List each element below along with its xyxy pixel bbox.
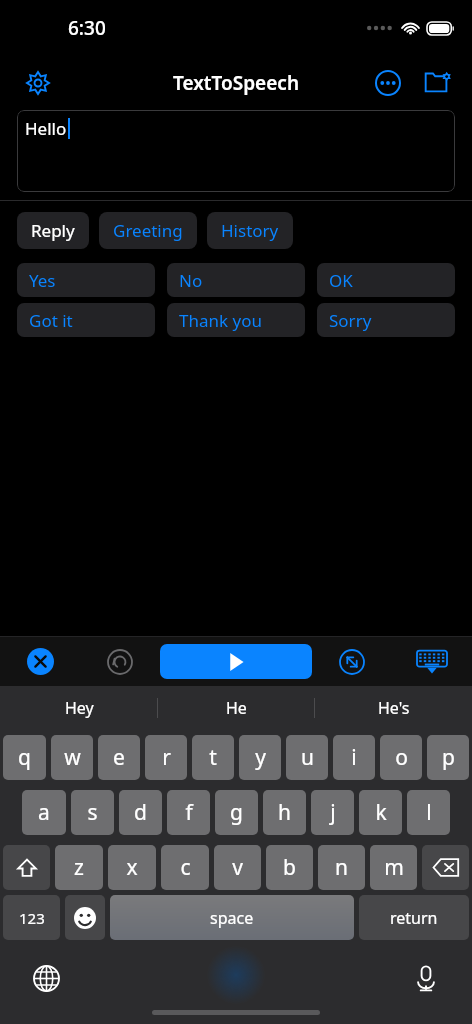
button[interactable]: t <box>192 735 234 780</box>
button[interactable]: Expand <box>312 637 392 686</box>
staticText: Hey <box>65 697 94 719</box>
button[interactable]: Folder settings <box>418 63 458 103</box>
button[interactable]: Got it <box>17 303 155 337</box>
staticText: i <box>351 743 357 772</box>
staticText: Hello <box>25 117 67 140</box>
staticText: j <box>330 798 336 827</box>
button[interactable]: Settings <box>18 63 58 103</box>
button[interactable]: return <box>359 895 469 940</box>
button[interactable]: Hello <box>17 110 455 192</box>
button[interactable]: o <box>380 735 422 780</box>
button[interactable]: a <box>22 790 66 835</box>
button[interactable]: Greeting <box>99 212 197 249</box>
button[interactable]: Undo <box>80 637 160 686</box>
staticText: Yes <box>29 269 56 292</box>
staticText: c <box>180 853 191 882</box>
button[interactable]: m <box>370 845 417 890</box>
staticText: OK <box>329 269 353 292</box>
staticText: z <box>74 853 84 882</box>
button[interactable]: Emoji <box>65 895 105 940</box>
staticText: f <box>185 798 193 827</box>
button[interactable]: He's <box>315 686 472 730</box>
button[interactable]: OK <box>317 263 455 297</box>
button[interactable]: Backspace <box>422 845 469 890</box>
button[interactable]: More options <box>368 63 408 103</box>
staticText: 6:30 <box>68 15 106 41</box>
button[interactable]: s <box>71 790 114 835</box>
button[interactable]: w <box>51 735 93 780</box>
button[interactable]: 123 <box>3 895 60 940</box>
staticText: a <box>38 798 50 827</box>
button[interactable]: k <box>359 790 402 835</box>
button[interactable]: Yes <box>17 263 155 297</box>
button[interactable]: x <box>108 845 156 890</box>
staticText: l <box>426 798 432 827</box>
button[interactable]: Speak <box>160 644 312 679</box>
staticText: t <box>209 743 217 772</box>
staticText: space <box>210 907 254 929</box>
button[interactable]: y <box>239 735 281 780</box>
button[interactable]: z <box>55 845 103 890</box>
button[interactable]: History <box>207 212 293 249</box>
button[interactable]: p <box>427 735 469 780</box>
staticText: v <box>232 853 243 882</box>
button[interactable]: Reply <box>17 212 89 249</box>
button[interactable]: j <box>311 790 354 835</box>
button[interactable]: c <box>161 845 209 890</box>
staticText: Thank you <box>179 309 262 332</box>
staticText: Sorry <box>329 309 372 332</box>
button[interactable]: Change language <box>26 958 66 998</box>
staticText: Reply <box>31 219 75 242</box>
staticText: w <box>64 743 81 772</box>
button[interactable]: i <box>333 735 375 780</box>
button[interactable]: Shift <box>3 845 50 890</box>
staticText: n <box>335 853 348 882</box>
staticText: TextToSpeech <box>173 70 300 96</box>
button[interactable]: g <box>215 790 258 835</box>
staticText: Greeting <box>113 219 183 242</box>
staticText: p <box>442 743 455 772</box>
staticText: History <box>221 219 279 242</box>
staticText: d <box>134 798 147 827</box>
button[interactable]: Thank you <box>167 303 305 337</box>
button[interactable]: d <box>119 790 162 835</box>
button[interactable]: Sorry <box>317 303 455 337</box>
button[interactable]: l <box>407 790 450 835</box>
button[interactable]: v <box>214 845 261 890</box>
button[interactable]: u <box>286 735 328 780</box>
button[interactable]: No <box>167 263 305 297</box>
button[interactable]: He <box>158 686 315 730</box>
staticText: Got it <box>29 309 73 332</box>
staticText: o <box>395 743 408 772</box>
button[interactable]: space <box>110 895 354 940</box>
staticText: m <box>384 853 404 882</box>
button[interactable]: Hey <box>0 686 158 730</box>
button[interactable]: h <box>263 790 306 835</box>
button[interactable]: q <box>3 735 46 780</box>
staticText: e <box>113 743 125 772</box>
staticText: q <box>18 743 31 772</box>
button[interactable]: n <box>318 845 365 890</box>
staticText: u <box>301 743 314 772</box>
staticText: b <box>283 853 296 882</box>
staticText: He <box>226 697 247 719</box>
button[interactable]: e <box>98 735 140 780</box>
staticText: 123 <box>19 908 45 928</box>
button[interactable]: r <box>145 735 187 780</box>
staticText: h <box>278 798 291 827</box>
staticText: He's <box>378 697 410 719</box>
staticText: y <box>255 743 266 772</box>
staticText: g <box>230 798 243 827</box>
button[interactable]: b <box>266 845 313 890</box>
staticText: k <box>375 798 387 827</box>
staticText: return <box>390 907 438 929</box>
staticText: r <box>162 743 171 772</box>
staticText: No <box>179 269 203 292</box>
button[interactable]: Dictation <box>406 958 446 998</box>
button[interactable]: Clear <box>0 637 80 686</box>
staticText: x <box>126 853 138 882</box>
staticText: s <box>87 798 98 827</box>
button[interactable]: Hide keyboard <box>392 637 472 686</box>
button[interactable]: f <box>167 790 210 835</box>
